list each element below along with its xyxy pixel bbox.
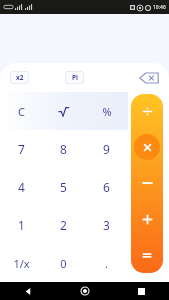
button[interactable]: %	[85, 92, 128, 130]
staticText: 4	[18, 179, 25, 195]
button[interactable]: Back	[0, 282, 57, 300]
button[interactable]: Subtract	[131, 165, 163, 201]
button[interactable]: Recent apps	[113, 282, 169, 300]
button[interactable]	[42, 92, 85, 130]
button[interactable]: Equals	[131, 237, 163, 273]
button[interactable]: 9	[85, 130, 128, 168]
staticText: 2	[60, 217, 67, 233]
staticText: C	[18, 104, 25, 119]
staticText: 6	[103, 179, 110, 195]
button[interactable]: 0	[42, 244, 85, 282]
button[interactable]: 1	[0, 206, 42, 244]
button[interactable]: 8	[42, 130, 85, 168]
button[interactable]: Multiply	[131, 129, 163, 165]
staticText: 0	[60, 256, 67, 271]
staticText: 1/x	[13, 256, 30, 271]
staticText: 8	[60, 141, 67, 157]
button[interactable]: Divide	[131, 94, 163, 129]
staticText: 9	[103, 141, 110, 157]
button[interactable]: 3	[85, 206, 128, 244]
staticText: .	[105, 256, 108, 271]
staticText: 1	[18, 217, 25, 233]
button[interactable]: Home	[57, 282, 113, 300]
staticText: x2	[16, 73, 24, 82]
staticText: %	[102, 104, 112, 119]
button[interactable]: 6	[85, 168, 128, 206]
button[interactable]: Pi	[65, 71, 84, 84]
button[interactable]: Backspace	[139, 72, 159, 84]
staticText: 7	[18, 141, 25, 157]
staticText: Pi	[72, 73, 78, 82]
staticText: 5	[60, 179, 67, 195]
staticText: 3	[103, 217, 110, 233]
button[interactable]: .	[85, 244, 128, 282]
button[interactable]: 5	[42, 168, 85, 206]
button[interactable]: 4	[0, 168, 42, 206]
button[interactable]: 1/x	[0, 244, 42, 282]
button[interactable]: C	[0, 92, 42, 130]
button[interactable]: 2	[42, 206, 85, 244]
button[interactable]: x2	[10, 71, 29, 84]
button[interactable]: Add	[131, 201, 163, 237]
button[interactable]: 7	[0, 130, 42, 168]
staticText: 10:46	[153, 4, 166, 11]
